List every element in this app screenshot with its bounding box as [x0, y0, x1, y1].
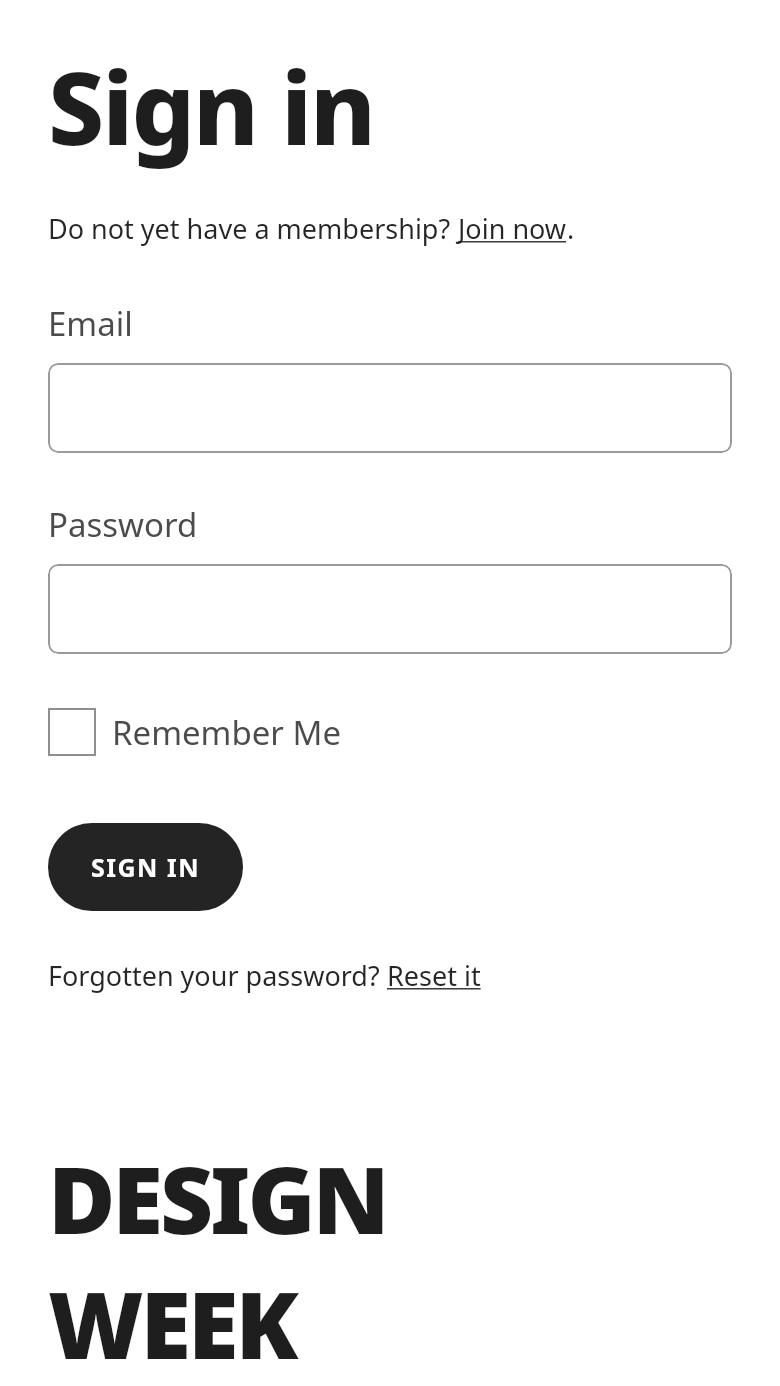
staticText: .: [567, 210, 575, 247]
staticText: Email: [48, 301, 133, 346]
staticText: SIGN IN: [91, 850, 200, 884]
button[interactable]: [48, 363, 732, 453]
staticText: WEEK: [48, 1261, 296, 1386]
button[interactable]: Join now: [458, 210, 567, 247]
staticText: Reset it: [387, 957, 481, 994]
button[interactable]: SIGN IN: [48, 823, 243, 911]
staticText: DESIGN: [48, 1136, 387, 1261]
staticText: Do not yet have a membership?: [48, 210, 458, 247]
button[interactable]: Remember Me: [48, 708, 342, 756]
staticText: Forgotten your password?: [48, 957, 387, 994]
other: Design Week: [48, 1136, 387, 1386]
staticText: Sign in: [48, 38, 374, 174]
button[interactable]: [48, 564, 732, 654]
staticText: Join now: [458, 210, 567, 247]
button[interactable]: Reset it: [387, 957, 481, 994]
staticText: Password: [48, 502, 198, 547]
staticText: Remember Me: [112, 710, 342, 755]
